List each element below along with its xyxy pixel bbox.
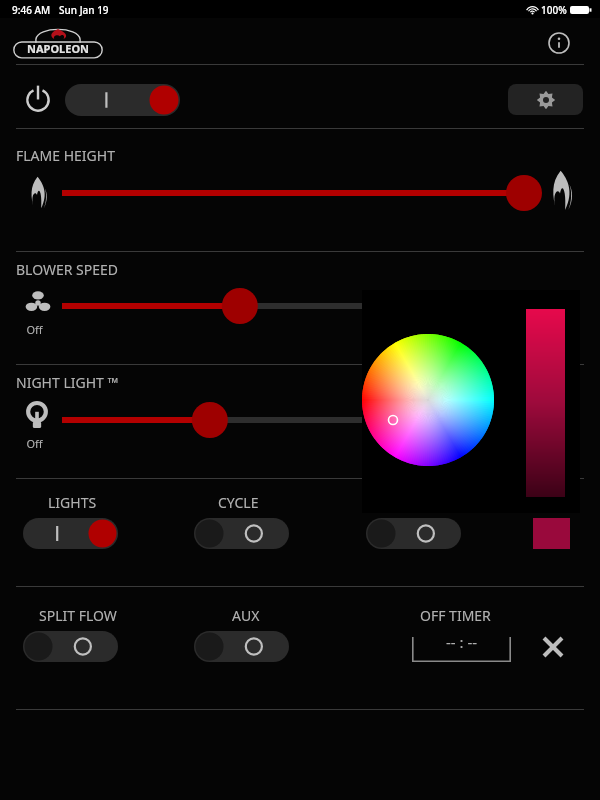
button[interactable] [62, 410, 524, 430]
staticText: -- : -- [446, 632, 478, 652]
button[interactable] [62, 296, 524, 316]
button[interactable] [23, 631, 118, 662]
staticText: OFF TIMER [420, 606, 491, 625]
button[interactable] [366, 518, 461, 549]
staticText: LIGHTS [48, 493, 97, 512]
staticText: NIGHT LIGHT ™ [16, 373, 119, 392]
button[interactable] [23, 518, 118, 549]
button[interactable] [62, 183, 524, 203]
staticText: Off [26, 436, 43, 451]
staticText: FLAME HEIGHT [16, 146, 115, 165]
staticText: AUX [232, 606, 260, 625]
button[interactable]: Clear timer [538, 632, 568, 662]
staticText: Sun Jan 19 [59, 3, 109, 17]
staticText: NAPOLEON [27, 41, 90, 56]
staticText: CYCLE [218, 493, 259, 512]
button[interactable]: Info [544, 28, 574, 58]
button[interactable]: Settings [508, 84, 583, 115]
staticText: 100% [541, 3, 567, 17]
button[interactable]: Power [22, 84, 54, 116]
button[interactable]: -- : -- [412, 630, 511, 662]
staticText: Off [26, 322, 43, 337]
staticText: SPLIT FLOW [39, 606, 117, 625]
staticText: 9:46 AM [12, 3, 51, 17]
button[interactable] [65, 84, 180, 116]
button[interactable] [194, 631, 289, 662]
button[interactable] [194, 518, 289, 549]
staticText: BLOWER SPEED [16, 260, 119, 279]
